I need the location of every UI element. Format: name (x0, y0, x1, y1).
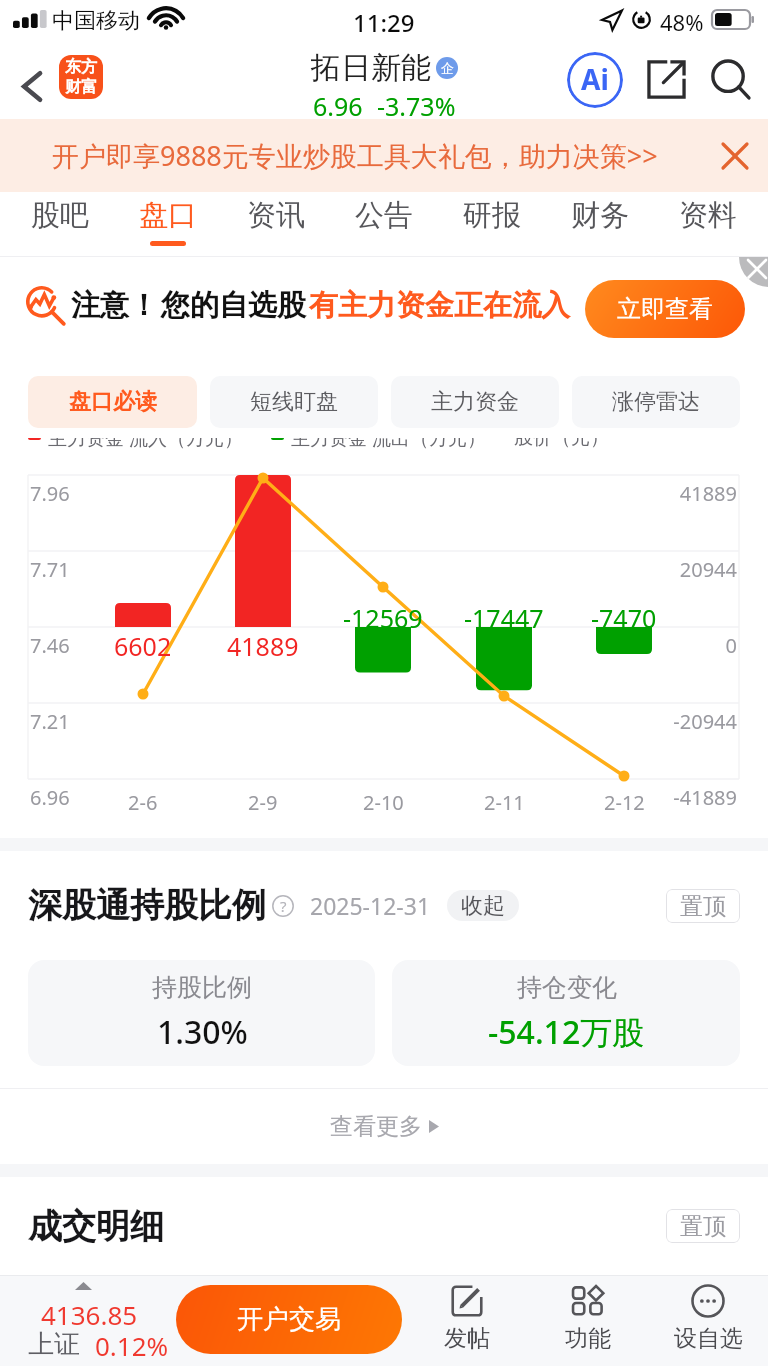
staticText: 2-9 (248, 789, 278, 816)
staticText: 资料 (679, 197, 737, 234)
button[interactable]: 搜索 (703, 52, 757, 106)
staticText: 深股通持股比例 (28, 884, 266, 927)
button[interactable]: 股吧 (5, 192, 114, 257)
button[interactable]: 持仓变化 (392, 960, 740, 1066)
staticText: 41889 (679, 480, 737, 507)
staticText: 持股比例 (152, 972, 252, 1003)
button[interactable]: 资料 (654, 192, 762, 257)
staticText: 41889 (227, 629, 299, 663)
button[interactable]: 短线盯盘 (210, 376, 378, 428)
staticText: 财富 (65, 77, 97, 97)
staticText: Ai (581, 60, 609, 98)
button[interactable]: 置顶 (666, 1209, 740, 1243)
button[interactable]: 置顶 (666, 889, 740, 923)
button[interactable]: 资讯 (222, 192, 330, 257)
staticText: 股吧 (31, 197, 89, 234)
staticText: 拓日新能 (311, 49, 431, 87)
staticText: 上证 (28, 1328, 80, 1361)
staticText: 东方 (65, 57, 97, 77)
staticText: 7.96 (30, 480, 70, 507)
button[interactable]: 东方财富 (59, 55, 103, 99)
staticText: -20944 (673, 708, 737, 735)
staticText: -17447 (464, 601, 544, 635)
staticText: 收起 (461, 892, 505, 920)
staticText: 盘口必读 (69, 388, 157, 416)
staticText: 11:29 (353, 6, 415, 39)
button[interactable]: 注意！ (0, 257, 768, 357)
button[interactable]: 主力资金 (391, 376, 559, 428)
staticText: 立即查看 (617, 294, 713, 324)
staticText: 2-10 (363, 789, 404, 816)
staticText: 2025-12-31 (310, 890, 431, 921)
staticText: 主力资金 流入（万元） (48, 425, 243, 451)
staticText: 开户交易 (237, 1303, 341, 1336)
staticText: 6.96 (313, 89, 363, 120)
staticText: 研报 (463, 197, 521, 234)
staticText: 主力资金 (431, 388, 519, 416)
staticText: 查看更多 (330, 1112, 422, 1141)
staticText: 持仓变化 (517, 972, 617, 1003)
button[interactable]: 返回 (8, 62, 56, 110)
button[interactable]: 持股比例 (28, 960, 375, 1066)
staticText: 资讯 (247, 197, 305, 234)
button[interactable]: 发帖 (412, 1284, 522, 1353)
button[interactable]: 财务 (546, 192, 654, 257)
button[interactable]: 盘口必读 (28, 376, 197, 428)
button[interactable]: 分享 (639, 52, 693, 106)
staticText: 功能 (565, 1324, 611, 1353)
staticText: -54.12万股 (488, 1010, 645, 1054)
staticText: 1.30% (157, 1010, 248, 1054)
staticText: 2-12 (604, 789, 645, 816)
staticText: 0 (725, 632, 737, 659)
button[interactable]: AI助手 (566, 51, 624, 109)
staticText: -3.73% (377, 89, 456, 120)
staticText: 财务 (571, 197, 629, 234)
staticText: 主力资金 流出（万元） (291, 425, 486, 451)
staticText: 发帖 (444, 1324, 490, 1353)
button[interactable]: 功能 (533, 1284, 643, 1353)
staticText: 股价（元） (514, 426, 609, 450)
button[interactable]: 关闭 (713, 134, 757, 178)
staticText: 20944 (679, 556, 737, 583)
staticText: 6.96 (30, 784, 70, 811)
staticText: -12569 (343, 601, 423, 635)
staticText: 2-11 (484, 789, 525, 816)
staticText: ? (280, 896, 287, 916)
staticText: 4136.85 (41, 1297, 138, 1332)
staticText: 企 (441, 60, 454, 76)
staticText: 设自选 (674, 1324, 743, 1353)
staticText: 公告 (355, 197, 413, 234)
staticText: 注意！ (71, 287, 158, 324)
staticText: 开户即享9888元专业炒股工具大礼包，助力决策>> (52, 137, 658, 174)
button[interactable]: 设自选 (653, 1284, 763, 1353)
button[interactable]: 涨停雷达 (572, 376, 740, 428)
button[interactable]: 开户即享9888元专业炒股工具大礼包，助力决策>> (0, 119, 768, 192)
staticText: 置顶 (680, 1212, 726, 1241)
staticText: 涨停雷达 (612, 388, 700, 416)
staticText: 您的自选股 (161, 287, 306, 324)
staticText: 6602 (114, 629, 172, 663)
button[interactable]: 4136.85 (0, 1275, 176, 1366)
staticText: 7.71 (30, 556, 70, 583)
staticText: 0.12% (95, 1328, 169, 1363)
staticText: 短线盯盘 (250, 388, 338, 416)
staticText: 有主力资金正在流入 (309, 287, 570, 324)
button[interactable]: 收起 (447, 890, 519, 921)
staticText: 成交明细 (28, 1205, 164, 1248)
staticText: 7.21 (30, 708, 70, 735)
button[interactable]: 公告 (330, 192, 438, 257)
staticText: -7470 (591, 601, 657, 635)
staticText: 中国移动 (52, 7, 140, 35)
button[interactable]: 关闭广告 (739, 257, 768, 287)
button[interactable]: 立即查看 (585, 280, 745, 338)
staticText: 2-6 (128, 789, 158, 816)
staticText: 7.46 (30, 632, 70, 659)
staticText: 48% (660, 7, 704, 37)
button[interactable]: 研报 (438, 192, 546, 257)
button[interactable]: 盘口 (114, 192, 222, 257)
staticText: 盘口 (139, 197, 197, 234)
button[interactable]: 查看更多 (0, 1089, 768, 1164)
staticText: 置顶 (680, 892, 726, 921)
staticText: -41889 (673, 784, 737, 811)
button[interactable]: 开户交易 (176, 1285, 402, 1354)
